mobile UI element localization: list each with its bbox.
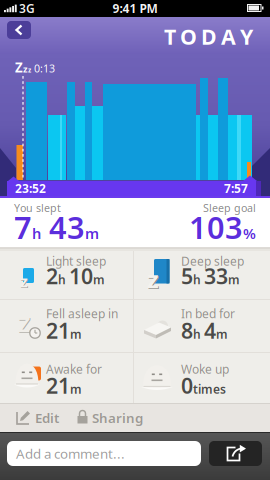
staticText: Light sleep <box>46 253 106 269</box>
staticText: z <box>148 264 160 296</box>
staticText: z <box>147 263 159 295</box>
staticText: Fell asleep in <box>46 306 118 322</box>
staticText: Edit <box>35 409 59 427</box>
staticText: 21m <box>46 371 82 400</box>
staticText: 9:41 PM <box>112 0 157 16</box>
staticText: 23:52 <box>15 180 46 196</box>
staticText: T O D A Y <box>164 22 253 51</box>
staticText: Z <box>19 311 31 339</box>
staticText: Deep sleep <box>181 253 244 269</box>
staticText: Awake for <box>46 361 102 377</box>
staticText: Add a comment... <box>16 445 125 462</box>
staticText: 2h 10m <box>46 262 105 290</box>
staticText: You slept <box>14 201 61 215</box>
staticText: z <box>21 271 29 292</box>
staticText: Zzz 0:13 <box>15 58 55 76</box>
staticText: 21m <box>46 316 82 345</box>
staticText: 7:57 <box>224 180 248 196</box>
staticText: 3G <box>19 0 35 16</box>
staticText: 7h 43m <box>14 207 99 247</box>
staticText: Woke up <box>181 361 229 377</box>
staticText: Sleep goal <box>203 201 256 215</box>
staticText: 0times <box>181 371 226 400</box>
staticText: 103% <box>189 207 256 247</box>
staticText: Sharing <box>92 409 143 427</box>
staticText: z <box>20 271 28 292</box>
staticText: In bed for <box>181 306 235 322</box>
staticText: Z <box>18 310 30 338</box>
staticText: 8h 4m <box>181 316 228 345</box>
staticText: 5h 33m <box>181 262 240 290</box>
